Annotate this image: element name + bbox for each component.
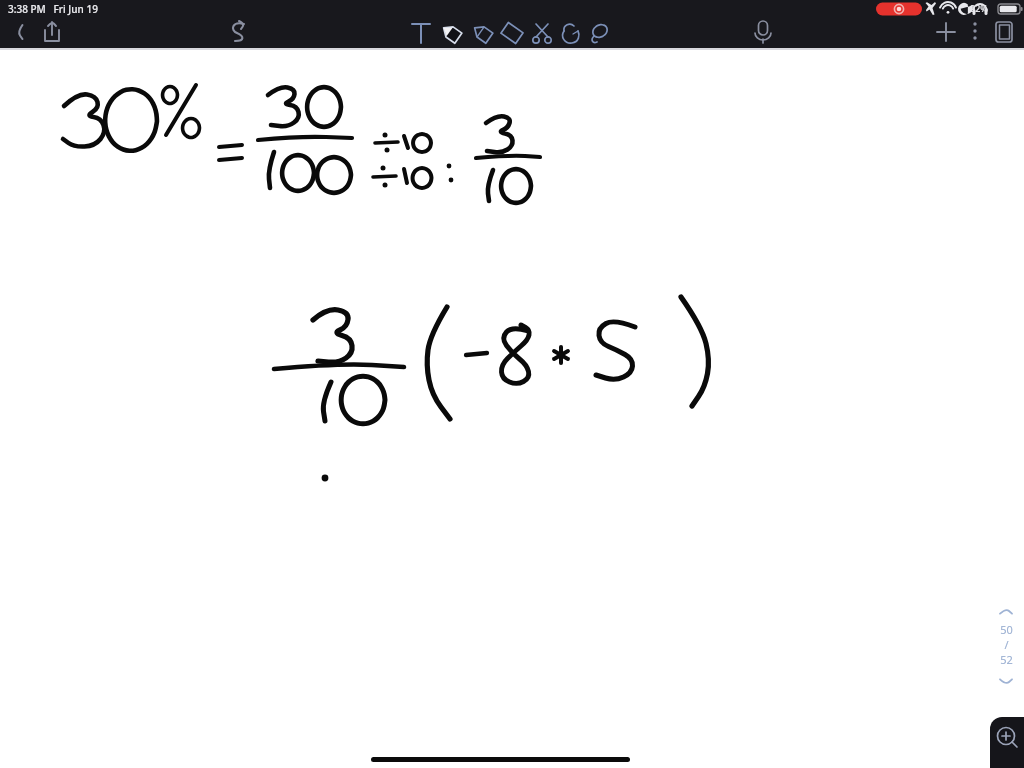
staticText: 92% bbox=[970, 2, 988, 14]
button[interactable]: Voice bbox=[749, 18, 777, 46]
button[interactable] bbox=[0, 50, 1024, 768]
button[interactable]: Eraser bbox=[498, 18, 526, 46]
button[interactable]: Add bbox=[932, 18, 960, 46]
button[interactable]: Undo bbox=[224, 18, 252, 46]
staticText: / bbox=[1004, 637, 1009, 652]
button[interactable]: Next page bbox=[992, 671, 1020, 693]
button[interactable]: Lasso bbox=[585, 18, 613, 46]
button[interactable]: Text bbox=[407, 18, 435, 46]
button[interactable]: Cut bbox=[528, 18, 556, 46]
button[interactable]: Previous page bbox=[992, 600, 1020, 622]
staticText: 50 bbox=[1000, 622, 1013, 637]
button[interactable]: Highlighter bbox=[468, 18, 496, 46]
button[interactable]: Pages bbox=[990, 18, 1018, 46]
staticText: 3:38 PM Fri Jun 19 bbox=[8, 2, 98, 16]
button[interactable]: Pen bbox=[437, 18, 465, 46]
staticText: 52 bbox=[1000, 652, 1013, 667]
button[interactable]: More options bbox=[962, 18, 988, 44]
button[interactable]: Select bbox=[557, 18, 585, 46]
button[interactable]: Zoom in bbox=[990, 717, 1024, 768]
button[interactable]: 50 bbox=[992, 622, 1020, 667]
button[interactable]: Share bbox=[38, 18, 66, 46]
button[interactable]: Back bbox=[6, 18, 34, 46]
